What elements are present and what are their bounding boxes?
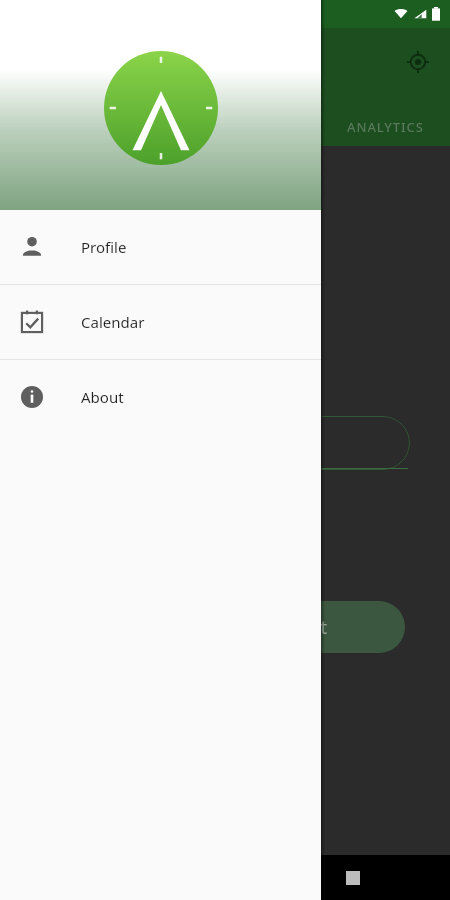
button[interactable]: About — [0, 360, 321, 434]
staticText: Check out — [243, 615, 328, 640]
button[interactable]: Office — [150, 416, 410, 470]
button[interactable]: My location — [400, 44, 436, 80]
button[interactable]: Calendar — [0, 285, 321, 359]
button[interactable]: Recent apps — [336, 861, 370, 895]
button[interactable]: ANALYTICS — [347, 118, 424, 136]
button[interactable]: Check out — [165, 601, 405, 653]
staticText: Calendar — [81, 312, 145, 332]
button[interactable]: Profile — [0, 210, 321, 284]
staticText: ANALYTICS — [347, 118, 424, 136]
staticText: About — [81, 387, 124, 407]
staticText: Profile — [81, 237, 127, 257]
